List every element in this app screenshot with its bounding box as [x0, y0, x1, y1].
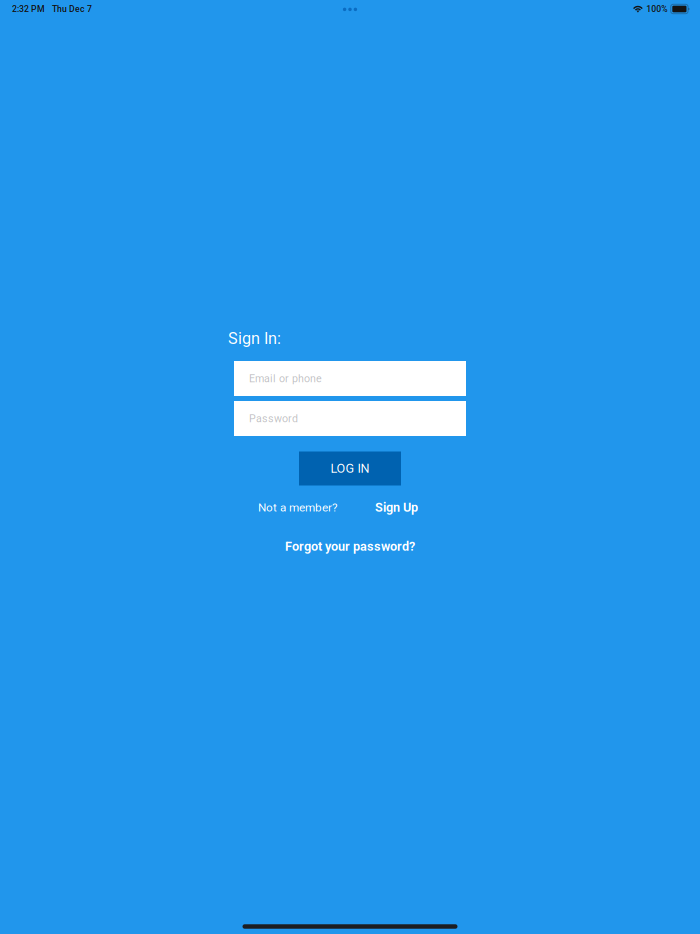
staticText: Sign In: [228, 329, 281, 348]
button[interactable]: Email or phone [234, 361, 466, 396]
staticText: Email or phone [249, 372, 322, 385]
staticText: Sign Up [375, 500, 418, 515]
button[interactable]: LOG IN [299, 451, 401, 485]
staticText: Thu Dec 7 [52, 4, 92, 14]
staticText: LOG IN [330, 461, 369, 476]
staticText: 100% [646, 4, 667, 14]
button[interactable]: Sign Up [375, 500, 418, 515]
staticText: Not a member? [258, 501, 338, 514]
staticText: Password [249, 412, 298, 425]
staticText: Forgot your password? [285, 539, 415, 554]
button[interactable]: Forgot your password? [285, 539, 415, 554]
button[interactable]: Password [234, 401, 466, 436]
staticText: 2:32 PM [12, 4, 45, 14]
